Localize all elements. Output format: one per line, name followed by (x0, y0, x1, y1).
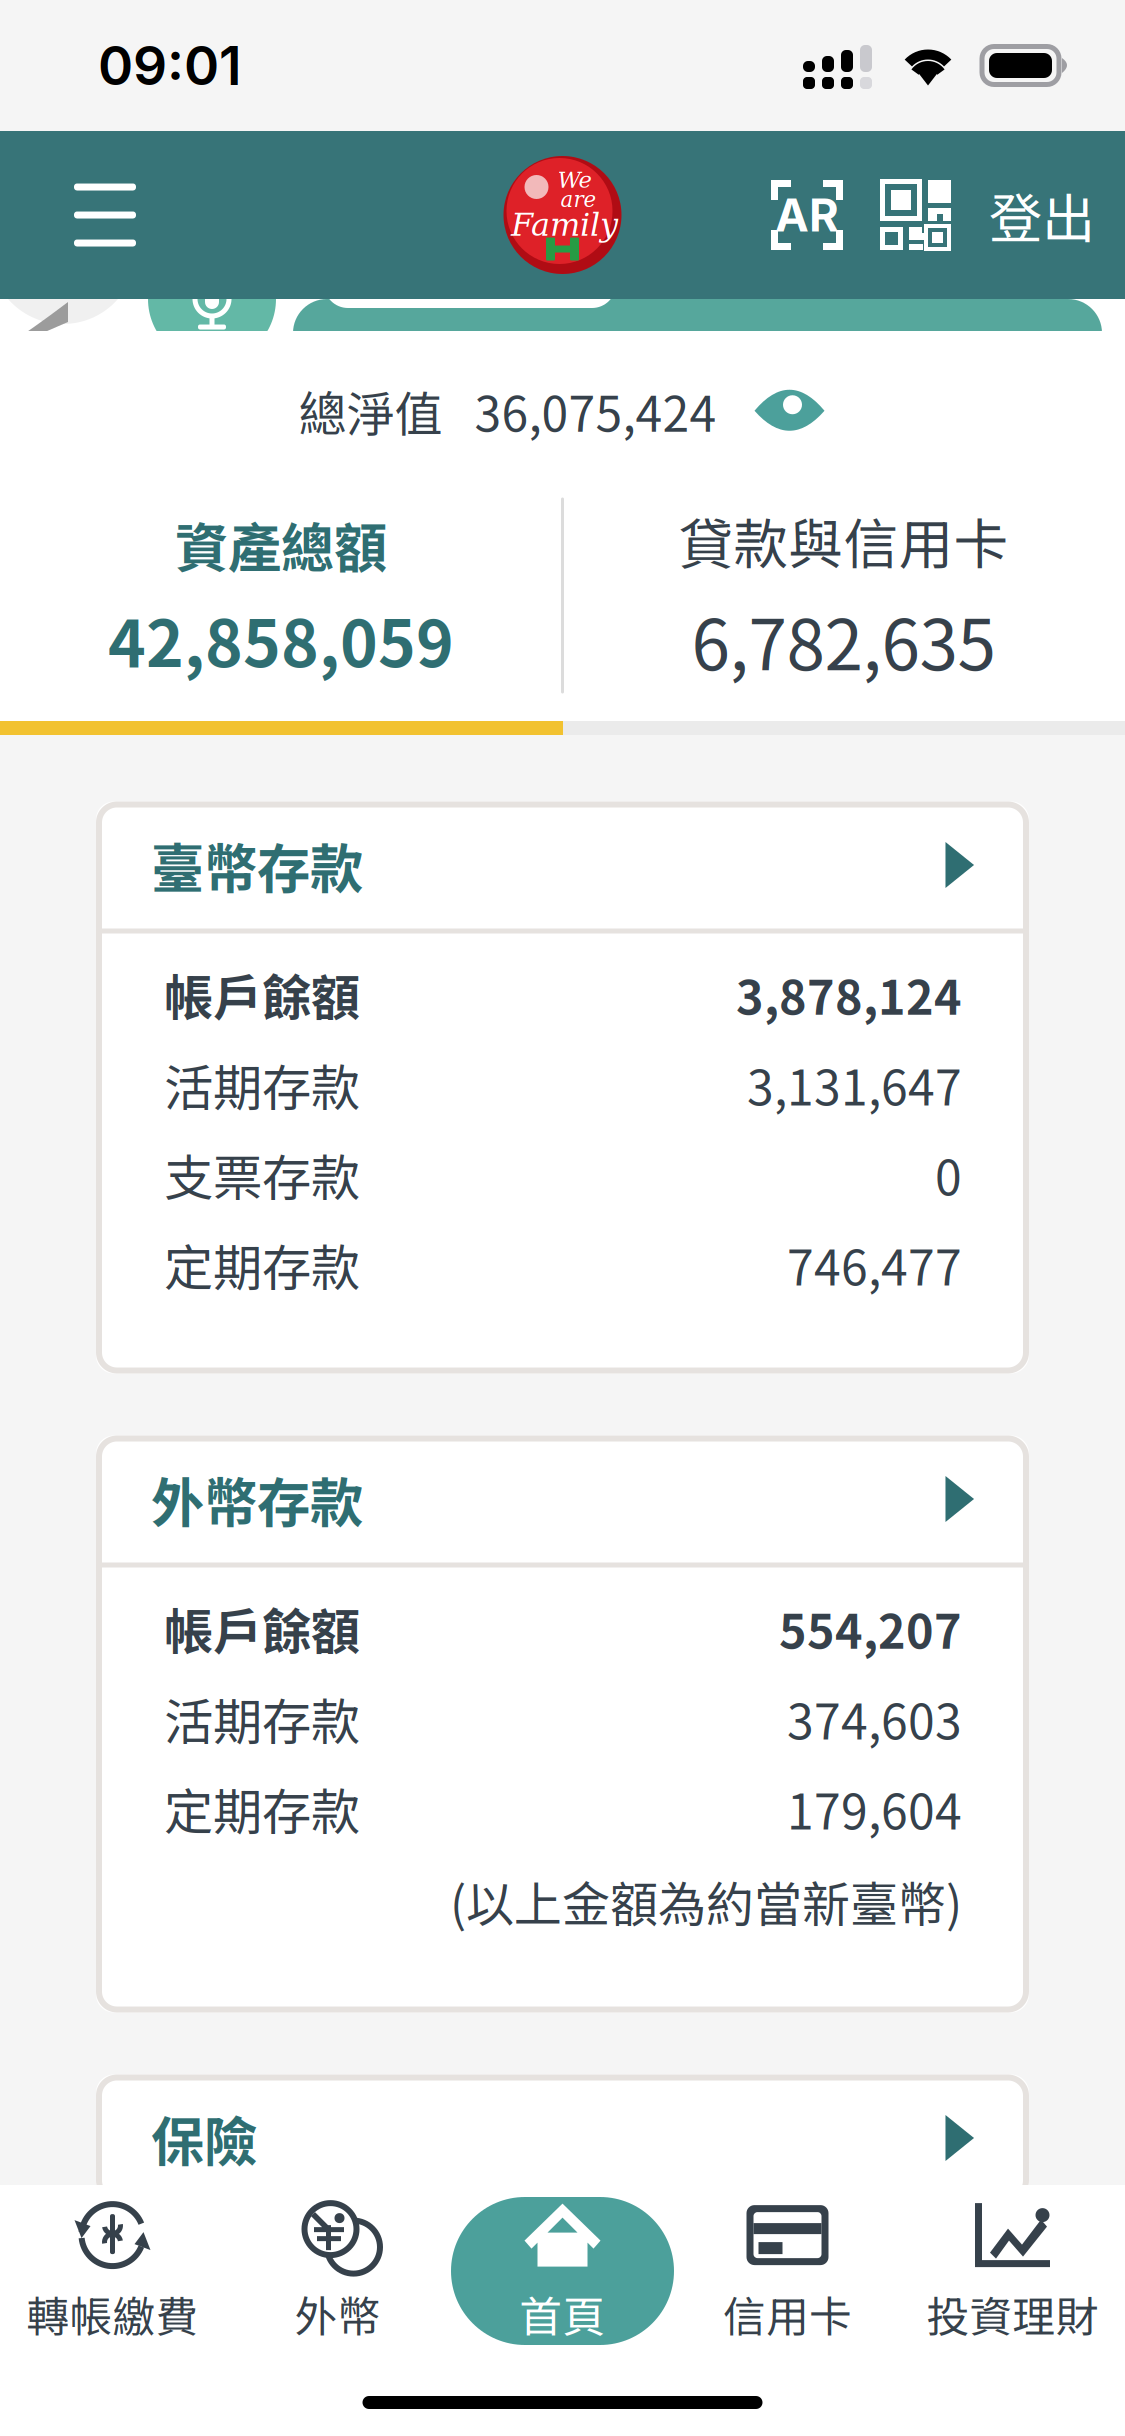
staticText: 總淨值 (298, 376, 442, 445)
staticText: 09:01 (98, 33, 242, 98)
button[interactable]: Hide balance (752, 389, 826, 433)
staticText: 3,878,124 (736, 961, 962, 1028)
staticText: 活期存款 (164, 1683, 360, 1754)
staticText: 投資理財 (926, 2283, 1098, 2345)
staticText: 臺幣存款 (151, 826, 363, 904)
button[interactable]: 外幣存款 (96, 1435, 1029, 1562)
staticText: 轉帳繳費 (26, 2283, 198, 2345)
staticText: 42,858,059 (108, 593, 454, 685)
button[interactable]: 信用卡 (675, 2191, 900, 2351)
button[interactable]: FamilyMart (503, 156, 621, 274)
staticText: 36,075,424 (474, 376, 716, 445)
button[interactable]: 外幣 (225, 2191, 450, 2351)
staticText: (以上金額為約當新臺幣) (450, 1866, 962, 1936)
button[interactable]: 轉帳繳費 (0, 2191, 225, 2351)
staticText: AR (775, 188, 839, 242)
button[interactable]: 登出 (989, 148, 1095, 282)
button[interactable]: AR (771, 152, 843, 278)
button[interactable]: 臺幣存款 (96, 801, 1029, 928)
staticText: 374,603 (787, 1684, 962, 1753)
staticText: 首頁 (519, 2283, 605, 2345)
staticText: 6,782,635 (691, 590, 995, 690)
button[interactable]: Menu (36, 147, 174, 282)
staticText: 定期存款 (164, 1773, 360, 1844)
staticText: 帳戶餘額 (164, 959, 360, 1030)
staticText: 信用卡 (723, 2283, 852, 2345)
staticText: 保險 (151, 2099, 257, 2177)
button[interactable]: 首頁 (450, 2191, 675, 2351)
staticText: 貸款與信用卡 (678, 501, 1008, 580)
staticText: 746,477 (787, 1230, 962, 1299)
staticText: We (557, 167, 591, 193)
button[interactable]: 保險 (96, 2074, 1029, 2201)
staticText: 支票存款 (164, 1139, 360, 1210)
staticText: 3,131,647 (747, 1050, 962, 1119)
staticText: are (560, 187, 596, 212)
button[interactable]: 投資理財 (900, 2191, 1125, 2351)
staticText: 資產總額 (175, 506, 387, 583)
staticText: 外幣存款 (151, 1460, 363, 1538)
staticText: 定期存款 (164, 1229, 360, 1300)
staticText: Family (511, 206, 618, 243)
staticText: 外幣 (294, 2283, 380, 2345)
staticText: 554,207 (779, 1595, 962, 1662)
button[interactable]: QR code scanner (880, 151, 951, 279)
staticText: 帳戶餘額 (164, 1593, 360, 1664)
staticText: 活期存款 (164, 1049, 360, 1120)
staticText: 登出 (989, 176, 1095, 254)
staticText: 0 (935, 1140, 962, 1209)
staticText: 179,604 (787, 1774, 962, 1843)
